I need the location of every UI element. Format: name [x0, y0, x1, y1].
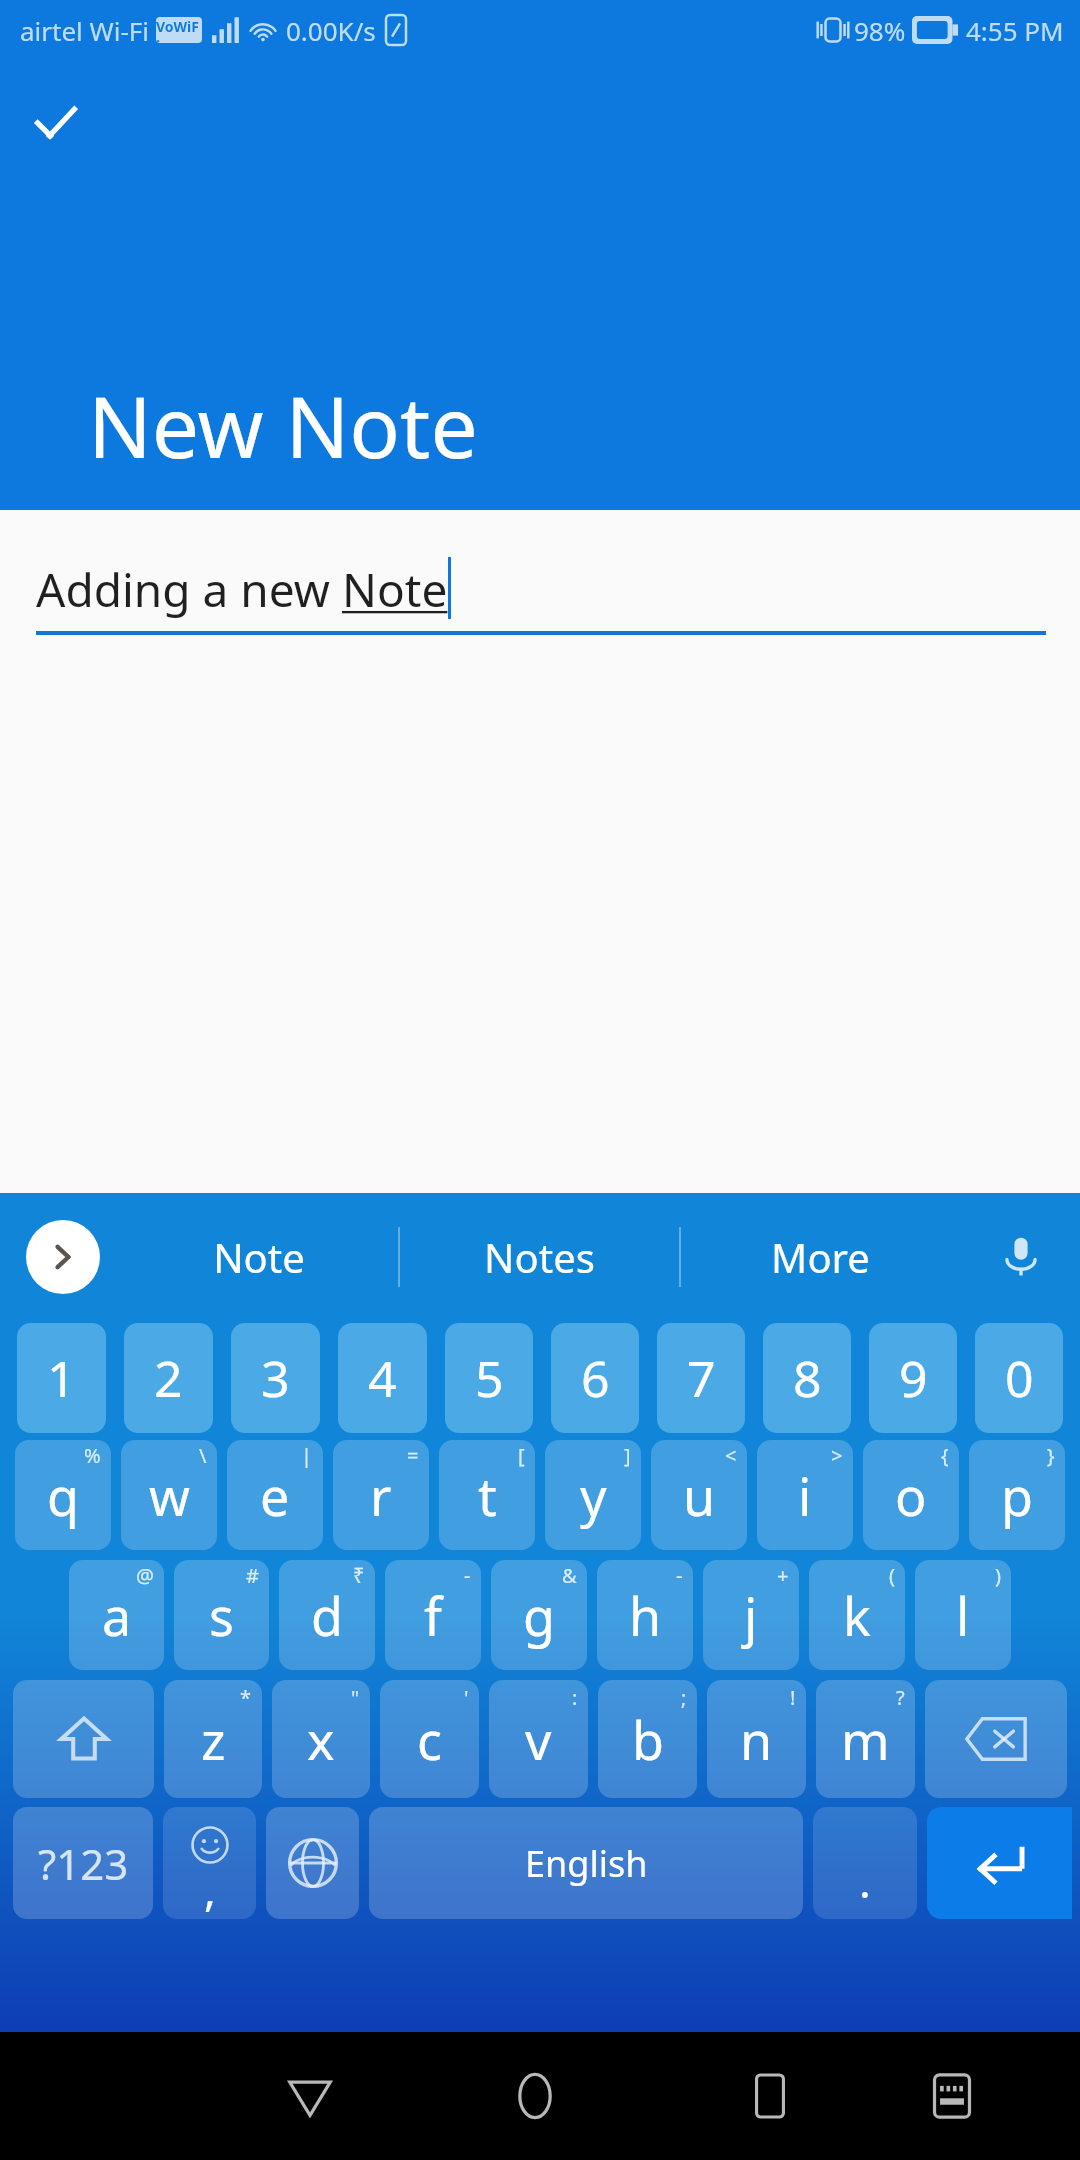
staticText: English: [525, 1839, 648, 1888]
button[interactable]: ': [380, 1680, 479, 1798]
button[interactable]: Enter: [927, 1807, 1072, 1919]
button[interactable]: ?123: [13, 1807, 153, 1919]
staticText: 4: [368, 1344, 397, 1412]
button[interactable]: ": [272, 1680, 370, 1798]
staticText: u: [683, 1460, 716, 1531]
button[interactable]: (: [809, 1560, 905, 1670]
staticText: d: [311, 1580, 343, 1651]
staticText: New Note: [88, 368, 478, 482]
button[interactable]: ₹: [279, 1560, 375, 1670]
staticText: r: [370, 1460, 392, 1531]
button[interactable]: Emoji: [163, 1807, 256, 1919]
button[interactable]: ]: [545, 1440, 641, 1550]
button[interactable]: Notes: [400, 1193, 679, 1321]
button[interactable]: 9: [869, 1323, 957, 1433]
button[interactable]: 8: [763, 1323, 851, 1433]
staticText: j: [744, 1580, 758, 1651]
button[interactable]: @: [69, 1560, 164, 1670]
button[interactable]: |: [227, 1440, 323, 1550]
button[interactable]: 1: [17, 1323, 106, 1433]
staticText: ,: [204, 1859, 216, 1919]
staticText: [: [518, 1442, 525, 1469]
button[interactable]: 6: [551, 1323, 639, 1433]
staticText: s: [209, 1580, 234, 1651]
button[interactable]: \: [121, 1440, 217, 1550]
staticText: 1: [47, 1344, 76, 1412]
button[interactable]: Home: [487, 2048, 583, 2144]
button[interactable]: 3: [231, 1323, 320, 1433]
staticText: 98%: [854, 13, 906, 48]
button[interactable]: 5: [445, 1323, 533, 1433]
button[interactable]: #: [174, 1560, 269, 1670]
button[interactable]: :: [489, 1680, 588, 1798]
staticText: Note: [342, 558, 448, 621]
staticText: \: [199, 1442, 207, 1469]
button[interactable]: {: [863, 1440, 959, 1550]
staticText: k: [843, 1580, 871, 1651]
staticText: q: [47, 1460, 79, 1531]
button[interactable]: <: [651, 1440, 747, 1550]
button[interactable]: -: [597, 1560, 693, 1670]
staticText: {: [941, 1442, 949, 1469]
staticText: (: [889, 1562, 895, 1589]
button[interactable]: !: [707, 1680, 806, 1798]
staticText: f: [424, 1580, 442, 1651]
button[interactable]: 4: [338, 1323, 427, 1433]
button[interactable]: &: [491, 1560, 587, 1670]
staticText: More: [771, 1230, 870, 1284]
button[interactable]: Back: [262, 2048, 358, 2144]
staticText: *: [240, 1684, 252, 1711]
button[interactable]: More: [681, 1193, 960, 1321]
staticText: n: [740, 1704, 773, 1775]
button[interactable]: ;: [598, 1680, 697, 1798]
button[interactable]: English: [369, 1807, 803, 1919]
button[interactable]: %: [15, 1440, 111, 1550]
staticText: p: [1001, 1460, 1033, 1531]
staticText: ?: [896, 1684, 905, 1711]
button[interactable]: *: [164, 1680, 262, 1798]
button[interactable]: Hide keyboard: [904, 2048, 1000, 2144]
button[interactable]: 0: [975, 1323, 1063, 1433]
staticText: z: [201, 1704, 226, 1775]
staticText: w: [149, 1460, 190, 1531]
button[interactable]: ): [915, 1560, 1011, 1670]
staticText: ₹: [353, 1562, 365, 1589]
staticText: b: [632, 1704, 664, 1775]
staticText: 0: [1005, 1344, 1034, 1412]
button[interactable]: 7: [657, 1323, 745, 1433]
staticText: Note: [213, 1230, 305, 1284]
button[interactable]: Voice input: [986, 1222, 1056, 1292]
staticText: VoWiFi: [156, 17, 202, 43]
button[interactable]: 2: [124, 1323, 213, 1433]
button[interactable]: =: [333, 1440, 429, 1550]
button[interactable]: Shift: [13, 1680, 154, 1798]
button[interactable]: .: [813, 1807, 917, 1919]
button[interactable]: }: [969, 1440, 1065, 1550]
staticText: m: [841, 1704, 890, 1775]
staticText: airtel Wi-Fi: [20, 13, 150, 48]
button[interactable]: More options: [26, 1220, 100, 1294]
button[interactable]: Change language: [266, 1807, 359, 1919]
staticText: 2: [154, 1344, 183, 1412]
staticText: l: [956, 1580, 970, 1651]
button[interactable]: +: [703, 1560, 799, 1670]
button[interactable]: Save note: [20, 86, 92, 158]
button[interactable]: Recent apps: [722, 2048, 818, 2144]
button[interactable]: Note: [120, 1193, 398, 1321]
button[interactable]: -: [385, 1560, 481, 1670]
staticText: |: [301, 1442, 313, 1469]
staticText: -: [676, 1562, 683, 1589]
staticText: :: [572, 1684, 578, 1711]
staticText: %: [84, 1442, 101, 1469]
staticText: ]: [624, 1442, 631, 1469]
staticText: ): [995, 1562, 1001, 1589]
staticText: Notes: [484, 1230, 595, 1284]
button[interactable]: Backspace: [925, 1680, 1067, 1798]
button[interactable]: ?: [816, 1680, 915, 1798]
staticText: c: [417, 1704, 442, 1775]
button[interactable]: [: [439, 1440, 535, 1550]
staticText: ;: [681, 1684, 687, 1711]
button[interactable]: Adding a new: [36, 558, 1046, 621]
button[interactable]: >: [757, 1440, 853, 1550]
staticText: 5: [475, 1344, 504, 1412]
